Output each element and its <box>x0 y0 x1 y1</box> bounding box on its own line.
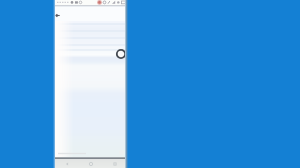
button[interactable]: Back <box>55 159 79 168</box>
button[interactable] <box>55 35 127 42</box>
button[interactable]: Recents <box>103 159 127 168</box>
button[interactable] <box>55 21 127 28</box>
button[interactable]: Back <box>53 11 62 20</box>
button[interactable] <box>55 28 127 35</box>
button[interactable]: Touch indicator <box>116 49 126 59</box>
button[interactable]: Home <box>79 159 103 168</box>
button[interactable] <box>55 42 127 49</box>
